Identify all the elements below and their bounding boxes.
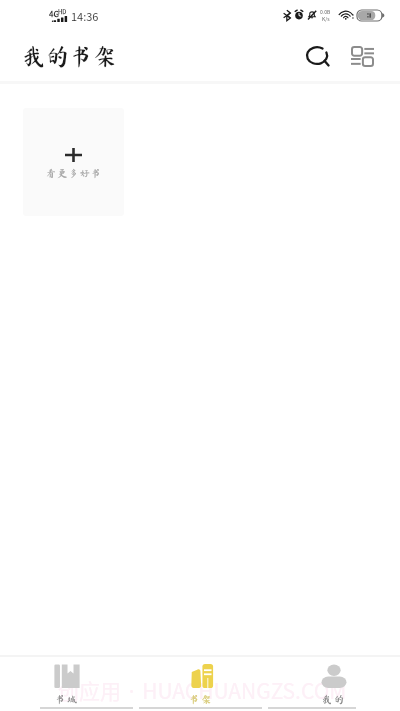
staticText: K/s — [322, 15, 330, 22]
button[interactable]: 看更多好书 — [23, 108, 124, 216]
button[interactable]: Search — [296, 34, 340, 78]
staticText: 书城 — [55, 694, 79, 704]
staticText: 0.0B — [320, 8, 331, 15]
staticText: HD — [58, 7, 67, 16]
button[interactable]: 书城 — [0, 664, 134, 704]
staticText: 创应用 · HUACHUANGZS.COM — [58, 675, 347, 705]
staticText: 我的 — [322, 694, 346, 704]
button[interactable]: 我的 — [267, 664, 400, 704]
staticText: 我的书架 — [22, 44, 116, 68]
button[interactable]: Change layout — [340, 34, 384, 78]
staticText: 书架 — [189, 694, 213, 704]
staticText: 14:36 — [71, 8, 99, 24]
button[interactable]: 书架 — [134, 664, 267, 704]
staticText: 4G — [49, 8, 59, 20]
staticText: 看更多好书 — [46, 168, 102, 178]
